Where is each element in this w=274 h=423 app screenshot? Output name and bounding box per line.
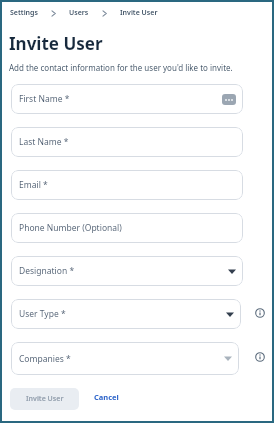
button[interactable]: Invite User xyxy=(10,388,79,410)
staticText: Invite User xyxy=(9,32,103,55)
button[interactable]: Phone Number (Optional) xyxy=(11,213,243,243)
staticText: First Name * xyxy=(19,93,70,105)
button[interactable]: Email * xyxy=(11,170,243,200)
staticText: Invite User xyxy=(26,394,64,404)
button[interactable]: Last Name * xyxy=(11,127,243,157)
staticText: Email * xyxy=(19,179,48,191)
button[interactable]: User Type * xyxy=(11,299,241,329)
staticText: Designation * xyxy=(19,265,75,277)
staticText: Settings xyxy=(10,8,38,18)
button[interactable]: Settings xyxy=(10,8,158,18)
button[interactable]: Designation * xyxy=(11,256,243,286)
button[interactable]: Companies * xyxy=(11,342,239,375)
staticText: Companies * xyxy=(19,353,71,365)
staticText: Last Name * xyxy=(19,136,69,148)
staticText: Phone Number (Optional) xyxy=(19,222,122,234)
staticText: Invite User xyxy=(120,8,158,18)
staticText: Users xyxy=(69,8,89,18)
button[interactable]: First Name * xyxy=(11,84,243,114)
staticText: User Type * xyxy=(19,308,66,320)
staticText: Cancel xyxy=(94,392,119,402)
staticText: Add the contact information for the user… xyxy=(9,62,233,73)
button[interactable]: Cancel xyxy=(92,390,121,404)
